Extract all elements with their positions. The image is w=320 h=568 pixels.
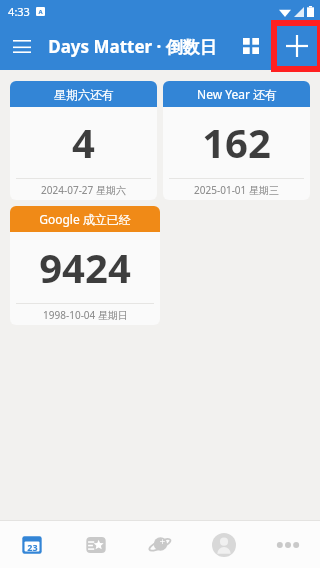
button[interactable]: Grid view	[228, 23, 274, 69]
staticText: 星期六还有	[54, 87, 114, 102]
button[interactable]: Calendar	[0, 521, 64, 568]
button[interactable]: Favorites	[64, 521, 128, 568]
staticText: 4:33	[8, 4, 30, 19]
button[interactable]: Google 成立已经	[10, 206, 160, 325]
staticText: 9424	[39, 240, 131, 294]
staticText: New Year 还有	[197, 86, 277, 102]
button[interactable]: Menu	[0, 24, 44, 68]
button[interactable]: Add	[274, 23, 320, 69]
button[interactable]: Profile	[192, 521, 256, 568]
staticText: 4	[72, 115, 95, 169]
staticText: 2025-01-01 星期三	[194, 183, 279, 197]
button[interactable]: New Year 还有	[163, 81, 310, 200]
button[interactable]: Explore	[128, 521, 192, 568]
button[interactable]: More	[256, 521, 320, 568]
staticText: A	[38, 8, 43, 16]
staticText: 1998-10-04 星期日	[43, 308, 128, 322]
staticText: 2024-07-27 星期六	[41, 183, 126, 197]
button[interactable]: 星期六还有	[10, 81, 157, 200]
staticText: Google 成立已经	[39, 211, 131, 227]
staticText: 162	[202, 115, 271, 169]
staticText: 23	[27, 541, 38, 553]
staticText: Days Matter · 倒数日	[48, 35, 217, 58]
